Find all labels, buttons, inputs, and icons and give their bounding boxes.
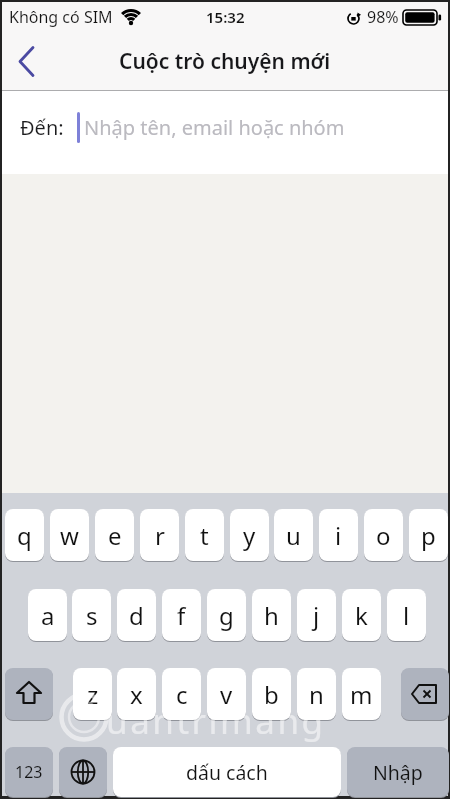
button[interactable]: g bbox=[207, 589, 246, 641]
staticText: s bbox=[86, 599, 98, 632]
staticText: 123 bbox=[15, 761, 43, 783]
button[interactable]: n bbox=[297, 668, 336, 720]
button[interactable] bbox=[5, 668, 53, 720]
button[interactable]: c bbox=[162, 668, 201, 720]
button[interactable]: p bbox=[409, 509, 448, 561]
staticText: Nhập tên, email hoặc nhóm bbox=[84, 114, 345, 141]
staticText: v bbox=[220, 678, 233, 711]
staticText: uantrimang bbox=[106, 697, 326, 745]
button[interactable]: r bbox=[140, 509, 179, 561]
button[interactable]: k bbox=[342, 589, 381, 641]
staticText: o bbox=[376, 519, 391, 552]
button[interactable]: Nhập bbox=[347, 747, 449, 797]
staticText: d bbox=[129, 599, 144, 632]
staticText: w bbox=[60, 519, 79, 552]
button[interactable]: z bbox=[73, 668, 112, 720]
staticText: e bbox=[108, 519, 122, 552]
button[interactable]: dấu cách bbox=[113, 747, 341, 797]
staticText: Không có SIM bbox=[9, 6, 113, 28]
button[interactable]: y bbox=[230, 509, 269, 561]
button[interactable]: d bbox=[117, 589, 156, 641]
button[interactable]: b bbox=[252, 668, 291, 720]
button[interactable]: w bbox=[50, 509, 89, 561]
button[interactable] bbox=[59, 747, 107, 797]
staticText: c bbox=[176, 678, 188, 711]
staticText: k bbox=[355, 599, 368, 632]
button[interactable]: s bbox=[72, 589, 111, 641]
staticText: r bbox=[155, 519, 165, 552]
button[interactable] bbox=[401, 668, 449, 720]
button[interactable]: t bbox=[185, 509, 224, 561]
staticText: u bbox=[286, 519, 301, 552]
staticText: a bbox=[41, 599, 55, 632]
staticText: g bbox=[219, 599, 234, 632]
staticText: y bbox=[243, 519, 256, 552]
staticText: Đến: bbox=[20, 114, 64, 141]
button[interactable]: v bbox=[207, 668, 246, 720]
staticText: i bbox=[335, 519, 342, 552]
staticText: x bbox=[130, 678, 143, 711]
button[interactable]: e bbox=[95, 509, 134, 561]
button[interactable]: l bbox=[387, 589, 426, 641]
button[interactable] bbox=[8, 39, 44, 83]
button[interactable]: o bbox=[364, 509, 403, 561]
button[interactable]: x bbox=[117, 668, 156, 720]
button[interactable]: i bbox=[319, 509, 358, 561]
staticText: p bbox=[421, 519, 436, 552]
staticText: z bbox=[87, 678, 99, 711]
staticText: 15:32 bbox=[206, 7, 245, 27]
button[interactable]: h bbox=[252, 589, 291, 641]
staticText: t bbox=[200, 519, 209, 552]
staticText: j bbox=[313, 599, 320, 632]
staticText: Cuộc trò chuyện mới bbox=[119, 47, 331, 76]
button[interactable]: j bbox=[297, 589, 336, 641]
button[interactable]: m bbox=[342, 668, 381, 720]
staticText: b bbox=[264, 678, 279, 711]
button[interactable]: q bbox=[5, 509, 44, 561]
button[interactable]: Đến: bbox=[2, 91, 448, 164]
staticText: q bbox=[17, 519, 32, 552]
button[interactable]: u bbox=[274, 509, 313, 561]
staticText: l bbox=[403, 599, 410, 632]
staticText: 98% bbox=[367, 6, 399, 28]
staticText: Nhập bbox=[373, 759, 423, 786]
button[interactable]: a bbox=[28, 589, 67, 641]
staticText: n bbox=[309, 678, 324, 711]
staticText: f bbox=[177, 599, 186, 632]
staticText: h bbox=[264, 599, 279, 632]
staticText: dấu cách bbox=[186, 759, 268, 786]
staticText: m bbox=[350, 678, 373, 711]
button[interactable]: 123 bbox=[5, 747, 53, 797]
button[interactable]: f bbox=[162, 589, 201, 641]
